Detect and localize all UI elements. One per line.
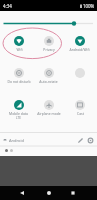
button[interactable]: Airplane mode (33, 99, 64, 121)
staticText: LTE (16, 116, 21, 120)
button[interactable]: Recents (67, 186, 79, 200)
button[interactable] (64, 67, 95, 89)
staticText: Android/Wifi (69, 47, 90, 52)
button[interactable]: Privacy (33, 35, 64, 57)
button[interactable]: Back (16, 186, 28, 200)
staticText: Privacy (43, 47, 55, 52)
staticText: 4:34 (3, 3, 12, 9)
staticText: Android (9, 138, 24, 143)
staticText: Mobile data (9, 111, 28, 116)
button[interactable]: Cast (64, 99, 95, 121)
staticText: Wifi (16, 47, 23, 52)
button[interactable]: Auto-rotate (33, 67, 64, 89)
button[interactable]: Home (43, 186, 55, 200)
button[interactable]: Settings (86, 135, 94, 146)
button[interactable]: Mobile data (3, 99, 34, 121)
staticText: 100% (83, 3, 95, 9)
staticText: Auto-rotate (39, 79, 58, 84)
button[interactable]: Edit (75, 135, 86, 146)
button[interactable]: Wifi (3, 35, 34, 57)
button[interactable]: Android/Wifi (64, 35, 95, 57)
staticText: Cast (77, 111, 84, 116)
staticText: Airplane mode (37, 111, 61, 116)
staticText: Do not disturb (7, 79, 31, 84)
button[interactable]: Do not disturb (3, 67, 34, 89)
